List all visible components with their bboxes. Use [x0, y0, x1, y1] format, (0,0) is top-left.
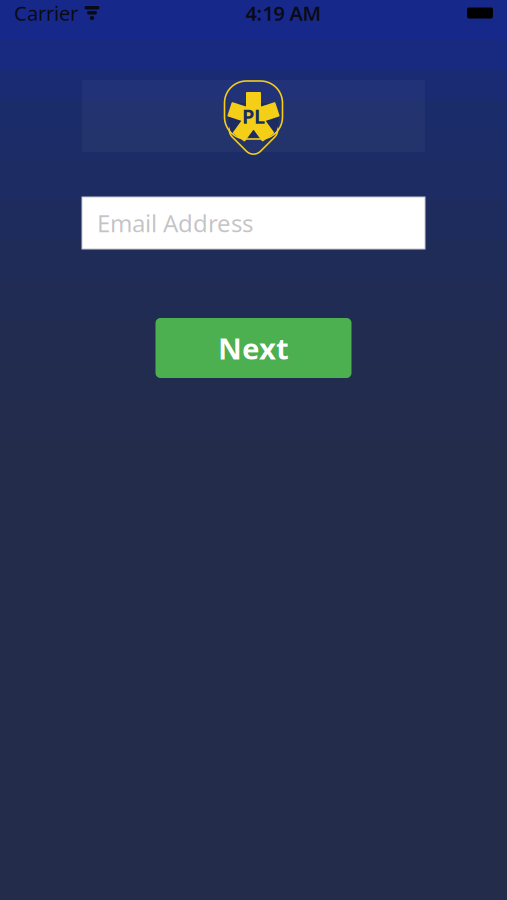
staticText: 4:19 AM: [245, 0, 321, 26]
staticText: PL: [242, 103, 265, 129]
staticText: Carrier: [14, 0, 78, 26]
staticText: Next: [218, 328, 289, 367]
staticText: Email Address: [97, 207, 253, 239]
button[interactable]: Email Address: [82, 197, 425, 249]
button[interactable]: Next: [155, 318, 351, 378]
